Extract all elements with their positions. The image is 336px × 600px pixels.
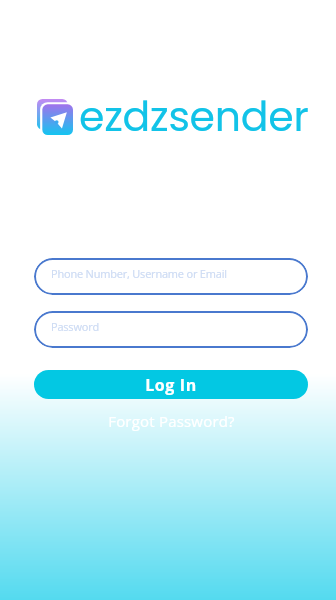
staticText: Phone Number, Username or Email [51,266,227,281]
staticText: ezdzsender [79,88,309,145]
button[interactable]: Log In [34,370,308,399]
button[interactable]: Forgot Password? [108,411,235,431]
staticText: Log In [145,374,197,396]
staticText: Password [51,319,99,334]
button[interactable]: Phone Number, Username or Email [34,258,308,295]
button[interactable]: Password [34,311,308,348]
other: ezdzsender logo [37,99,73,135]
